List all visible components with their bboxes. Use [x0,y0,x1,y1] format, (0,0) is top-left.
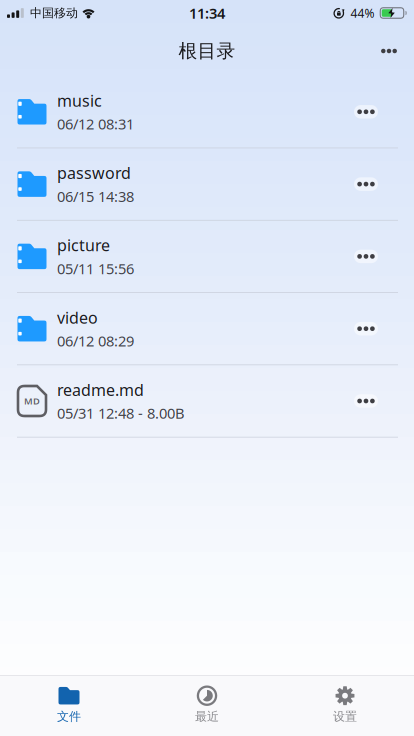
button[interactable]: More actions for picture [348,241,384,271]
staticText: 设置 [333,709,357,724]
staticText: 根目录 [178,39,235,62]
button[interactable]: 设置 [276,676,414,736]
button[interactable]: music [0,90,348,134]
staticText: 11:34 [189,3,225,23]
staticText: readme.md [57,379,144,400]
staticText: music [57,90,102,111]
button[interactable]: More [374,36,404,66]
staticText: 最近 [195,709,219,724]
button[interactable]: MD [0,379,348,423]
staticText: password [57,162,131,183]
staticText: 文件 [57,709,81,724]
staticText: MD [24,395,40,407]
button[interactable]: picture [0,234,348,278]
button[interactable]: 最近 [138,676,276,736]
staticText: 中国移动 [30,6,78,20]
button[interactable]: 文件 [0,676,138,736]
staticText: 06/15 14:38 [57,186,134,206]
staticText: 05/31 12:48 - 8.00B [57,403,185,423]
button[interactable]: More actions for readme.md [348,386,384,416]
staticText: 05/11 15:56 [57,259,134,278]
staticText: picture [57,234,110,256]
staticText: 44% [350,5,374,21]
button[interactable]: video [0,307,348,350]
staticText: 06/12 08:31 [57,114,134,134]
button[interactable]: password [0,162,348,206]
button[interactable]: More actions for music [348,97,384,127]
button[interactable]: More actions for video [348,314,384,344]
staticText: video [57,307,98,328]
staticText: 06/12 08:29 [57,331,134,351]
button[interactable]: More actions for password [348,169,384,199]
